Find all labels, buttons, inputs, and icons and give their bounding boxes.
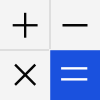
button[interactable]: Multiply	[0, 50, 50, 100]
button[interactable]: Equals	[50, 50, 100, 100]
button[interactable]: Minus	[50, 0, 100, 50]
button[interactable]: Plus	[0, 0, 50, 50]
